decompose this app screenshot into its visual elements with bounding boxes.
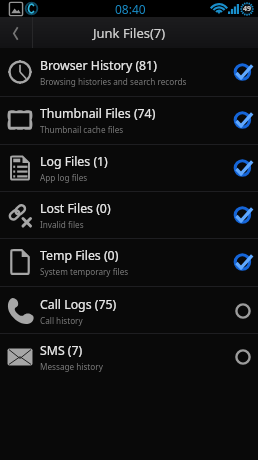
staticText: Browsing histories and search records xyxy=(40,76,187,87)
button[interactable]: Thumbnail Files (74) xyxy=(0,97,258,143)
staticText: System temporary files xyxy=(40,266,129,277)
staticText: Junk Files(7) xyxy=(93,24,166,42)
staticText: Lost Files (0) xyxy=(40,200,111,217)
button[interactable]: Lost Files (0) xyxy=(0,192,258,238)
staticText: Invalid files xyxy=(40,219,84,230)
button[interactable]: SMS (7) xyxy=(0,334,258,380)
staticText: Message history xyxy=(40,361,103,372)
staticText: Call history xyxy=(40,315,83,326)
staticText: Call Logs (75) xyxy=(40,296,117,313)
button[interactable]: Log Files (1) xyxy=(0,145,258,191)
button[interactable]: Temp Files (0) xyxy=(0,239,258,285)
staticText: Temp Files (0) xyxy=(40,247,119,264)
button[interactable]: Back xyxy=(0,17,32,48)
staticText: 08:40 xyxy=(115,1,146,17)
staticText: Thumbnail Files (74) xyxy=(40,105,156,122)
staticText: Log Files (1) xyxy=(40,153,108,170)
staticText: Browser History (81) xyxy=(40,57,157,74)
button[interactable]: Browser History (81) xyxy=(0,48,258,96)
button[interactable]: Call Logs (75) xyxy=(0,287,258,334)
staticText: 49 xyxy=(243,4,252,14)
staticText: Thumbnail cache files xyxy=(40,124,124,135)
staticText: App log files xyxy=(40,172,88,183)
staticText: SMS (7) xyxy=(40,342,83,359)
